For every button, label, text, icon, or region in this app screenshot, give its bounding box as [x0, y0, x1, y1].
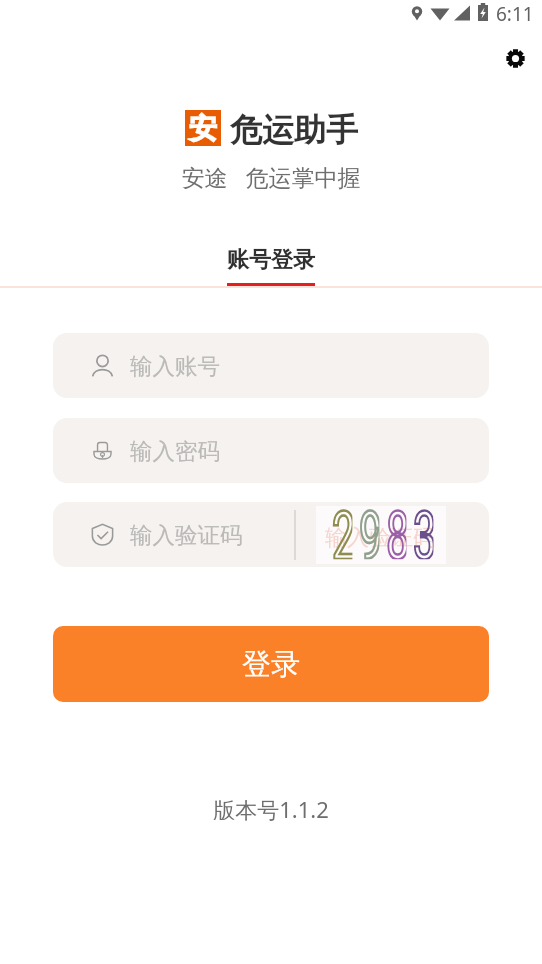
staticText: 输入验证码	[130, 521, 243, 549]
staticText: 输入验证码	[325, 524, 435, 552]
button[interactable]: 输入验证码	[53, 502, 489, 567]
staticText: 账号登录	[227, 246, 315, 274]
staticText: 输入密码	[130, 437, 220, 465]
button[interactable]: 输入密码	[53, 418, 489, 483]
staticText: 版本号1.1.2	[0, 794, 542, 824]
staticText: 3	[413, 502, 433, 559]
button[interactable]: 登录	[53, 626, 489, 702]
staticText: 安途 危运掌中握	[0, 161, 542, 192]
staticText: 输入账号	[130, 352, 220, 380]
staticText: 安	[189, 111, 217, 146]
staticText: 6:11	[496, 1, 534, 27]
button[interactable]: 输入账号	[53, 333, 489, 398]
staticText: 9	[359, 502, 379, 559]
staticText: 危运助手	[230, 110, 358, 150]
button[interactable]: Refresh captcha	[316, 506, 446, 564]
staticText: 登录	[242, 646, 300, 683]
button[interactable]: Settings	[493, 36, 537, 80]
staticText: 2	[332, 502, 352, 559]
staticText: 8	[386, 502, 406, 559]
